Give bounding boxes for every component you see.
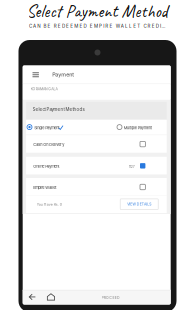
staticText: You Have Rs. 0	[37, 202, 62, 207]
staticText: Cash On Delivery	[33, 142, 64, 147]
staticText: Select Payment Method	[26, 0, 167, 22]
staticText: Empire Wallet	[33, 185, 56, 190]
staticText: Online Payment	[33, 164, 59, 169]
staticText: Select Payment Methods	[32, 107, 84, 112]
button[interactable]: PROCEED	[23, 65, 171, 304]
button[interactable]: Back	[23, 65, 171, 304]
staticText: KORAMANGALA	[30, 87, 57, 91]
button[interactable]: Menu	[23, 65, 171, 304]
button[interactable]: Cash On Delivery	[23, 65, 171, 153]
button[interactable]: Multiple Payment	[23, 65, 171, 135]
staticText: CAN BE REDEEMED EMPIRE WALLET CREDIT	[29, 23, 165, 29]
button[interactable]: Empire Wallet	[23, 65, 171, 196]
button[interactable]: Home	[23, 65, 171, 304]
staticText: PROCEED	[101, 296, 120, 300]
staticText: 1127	[129, 165, 135, 169]
staticText: Payment	[52, 71, 74, 78]
button[interactable]: VIEW DETAILS	[23, 65, 171, 304]
button[interactable]: Single Payment	[23, 65, 171, 135]
staticText: Single Payment	[34, 125, 59, 130]
button[interactable]: Online Payment	[23, 65, 171, 175]
staticText: VIEW DETAILS	[127, 202, 151, 206]
staticText: Multiple Payment	[124, 125, 152, 130]
